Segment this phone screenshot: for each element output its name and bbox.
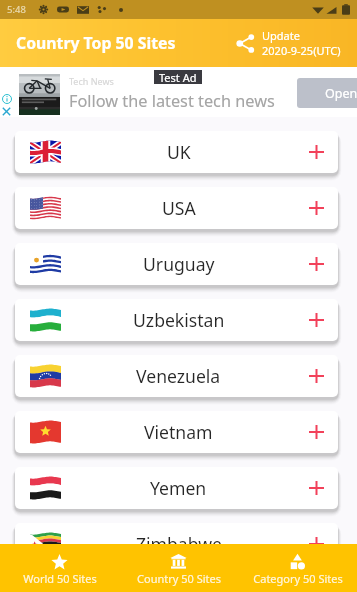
- button[interactable]: Add: [304, 308, 328, 332]
- button[interactable]: Uruguay: [15, 243, 338, 285]
- staticText: Uzbekistan: [133, 308, 225, 332]
- button[interactable]: Category 50 Sites: [238, 544, 357, 592]
- staticText: 5:48: [7, 3, 26, 16]
- staticText: Country 50 Sites: [137, 571, 221, 586]
- button[interactable]: Add: [304, 196, 328, 220]
- button[interactable]: Zimbabwe: [15, 523, 338, 565]
- button[interactable]: Add: [304, 252, 328, 276]
- button[interactable]: Ad info: [2, 94, 12, 104]
- staticText: USA: [162, 196, 196, 220]
- button[interactable]: Vietnam: [15, 411, 338, 453]
- staticText: Category 50 Sites: [253, 571, 343, 586]
- button[interactable]: Add: [304, 420, 328, 444]
- button[interactable]: Venezuela: [15, 355, 338, 397]
- staticText: Test Ad: [159, 70, 197, 84]
- button[interactable]: Close ad: [2, 107, 11, 116]
- button[interactable]: USA: [15, 187, 338, 229]
- button[interactable]: Add: [304, 364, 328, 388]
- button[interactable]: Uzbekistan: [15, 299, 338, 341]
- staticText: Venezuela: [136, 364, 221, 388]
- staticText: Update: [262, 28, 300, 43]
- button[interactable]: Open: [297, 78, 357, 108]
- staticText: UK: [167, 140, 191, 164]
- staticText: Uruguay: [143, 252, 215, 276]
- staticText: Open: [325, 85, 357, 102]
- staticText: Follow the latest tech news: [69, 90, 275, 112]
- button[interactable]: World 50 Sites: [0, 544, 119, 592]
- staticText: Yemen: [150, 476, 207, 500]
- staticText: Tech News: [69, 75, 114, 87]
- button[interactable]: UK: [15, 131, 338, 173]
- staticText: Zimbabwe: [136, 532, 222, 556]
- button[interactable]: Add: [304, 140, 328, 164]
- button[interactable]: Update: [262, 26, 341, 60]
- staticText: 2020-9-25(UTC): [262, 43, 341, 58]
- button[interactable]: Yemen: [15, 467, 338, 509]
- button[interactable]: Add: [304, 476, 328, 500]
- staticText: Vietnam: [144, 420, 213, 444]
- staticText: World 50 Sites: [23, 571, 97, 586]
- button[interactable]: Add: [304, 532, 328, 556]
- staticText: Country Top 50 Sites: [16, 32, 176, 54]
- button[interactable]: Country 50 Sites: [119, 544, 238, 592]
- button[interactable]: Share: [228, 26, 262, 60]
